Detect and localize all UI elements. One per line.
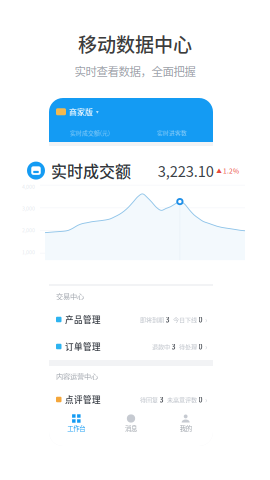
staticText: 工作台: [67, 423, 85, 433]
button[interactable]: 订单管理: [49, 333, 213, 360]
staticText: 0: [198, 394, 202, 404]
staticText: 3,223.10: [158, 160, 214, 181]
staticText: 实时成交额: [51, 159, 131, 182]
staticText: 0: [198, 341, 202, 351]
staticText: 1.2%: [223, 166, 239, 175]
staticText: ▲: [216, 166, 222, 175]
staticText: 3,000: [22, 204, 35, 212]
staticText: 交易中心: [56, 291, 84, 301]
staticText: 1,000: [22, 248, 35, 256]
staticText: 点评管理: [65, 393, 101, 406]
staticText: ›: [205, 314, 207, 325]
staticText: 退款中: [152, 342, 170, 351]
staticText: 今日下线: [173, 315, 197, 324]
staticText: 4,000: [22, 183, 35, 190]
button[interactable]: 工作台: [49, 413, 104, 446]
staticText: 内容运营中心: [56, 371, 98, 381]
staticText: 我的: [180, 423, 192, 433]
staticText: 商家版: [69, 106, 93, 118]
staticText: 3: [159, 394, 163, 404]
staticText: 即将到期: [140, 315, 164, 324]
staticText: 消息: [125, 423, 137, 433]
staticText: 3: [171, 341, 175, 351]
staticText: 待处理: [179, 342, 197, 351]
button[interactable]: 点评管理: [49, 386, 213, 413]
staticText: 产品管理: [65, 313, 101, 326]
staticText: 待回复: [140, 395, 158, 404]
staticText: ▾: [96, 109, 99, 115]
staticText: ›: [205, 341, 207, 352]
staticText: 3: [165, 314, 169, 324]
staticText: 实时查看数据，全面把握: [74, 63, 195, 79]
button[interactable]: 消息: [104, 413, 158, 446]
staticText: 实时进客数: [157, 128, 187, 137]
staticText: 0: [198, 314, 202, 324]
button[interactable]: 产品管理: [49, 306, 213, 333]
staticText: ›: [205, 394, 207, 405]
staticText: 未高意评数: [167, 395, 197, 404]
button[interactable]: 我的: [158, 413, 213, 446]
staticText: 订单管理: [65, 340, 101, 353]
staticText: 2,000: [22, 226, 35, 234]
staticText: 移动数据中心: [78, 30, 192, 58]
staticText: 实时成交额(元): [70, 128, 110, 137]
